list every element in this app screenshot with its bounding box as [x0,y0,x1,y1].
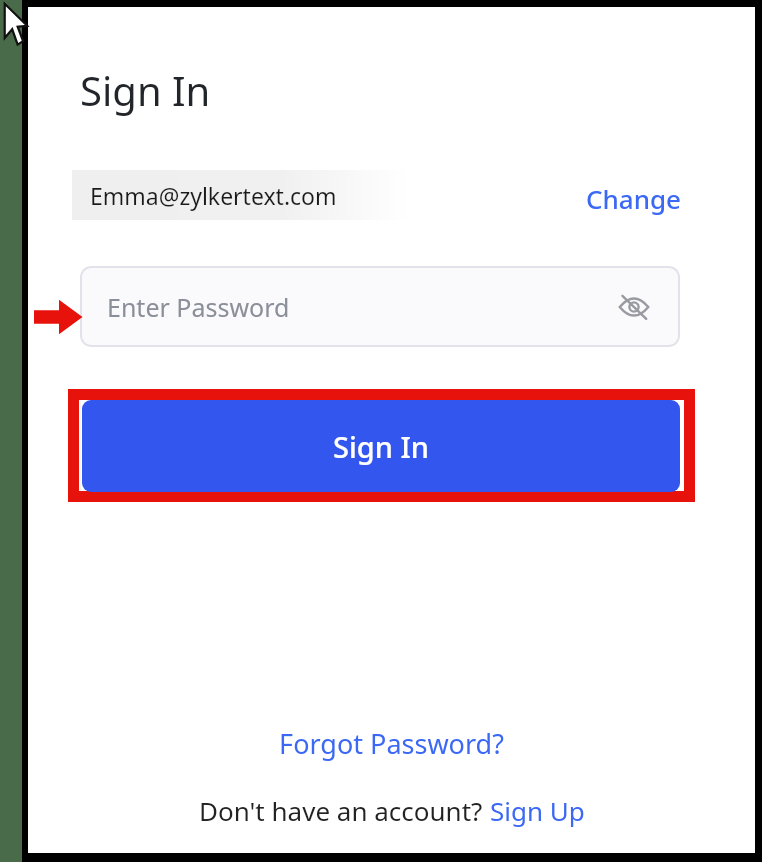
button[interactable]: Show password [614,287,654,327]
staticText: Sign In [80,63,211,117]
staticText: Don't have an account? [199,793,490,828]
button[interactable]: Enter Password [80,266,680,347]
staticText: Sign Up [490,793,585,828]
button[interactable]: Sign In [82,400,680,492]
staticText: Forgot Password? [279,725,504,762]
button[interactable]: Emma@zylkertext.com [72,170,410,220]
staticText: Enter Password [107,290,290,324]
staticText: Emma@zylkertext.com [90,180,337,211]
staticText: Sign In [333,427,429,466]
staticText: Change [586,181,682,216]
button[interactable]: Change [578,175,690,222]
button[interactable]: Sign Up [490,793,585,828]
button[interactable]: Forgot Password? [269,719,514,768]
